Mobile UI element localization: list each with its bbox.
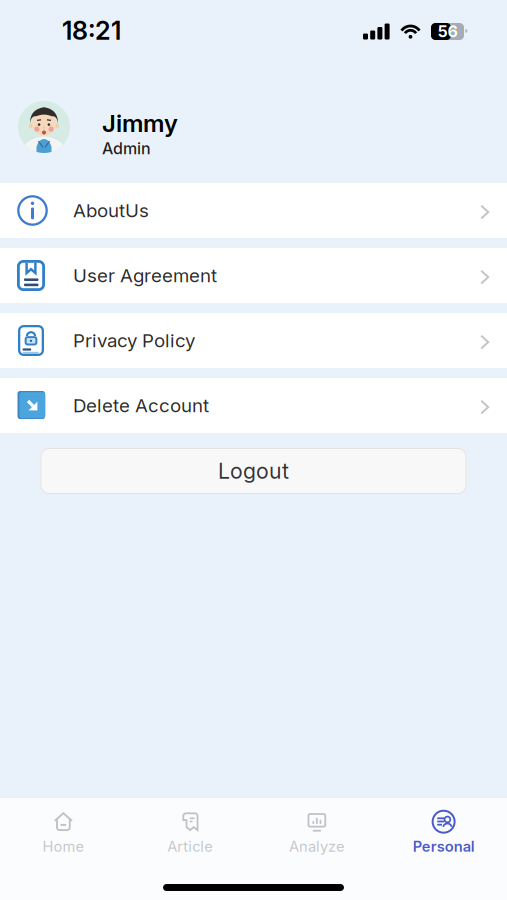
staticText: Analyze [289,838,345,855]
staticText: 18:21 [62,15,121,45]
button[interactable]: Privacy Policy [0,313,507,368]
button[interactable]: Article [127,810,254,866]
staticText: Logout [218,458,289,484]
staticText: Jimmy [102,109,178,137]
button[interactable]: Delete Account [0,378,507,433]
staticText: 56 [437,22,457,41]
staticText: Personal [413,838,475,855]
staticText: Home [42,838,84,855]
staticText: Privacy Policy [73,329,195,351]
button[interactable]: Personal [380,810,507,866]
button[interactable]: Analyze [253,810,380,866]
staticText: Article [167,838,213,855]
staticText: AboutUs [73,199,149,221]
staticText: Admin [102,139,151,158]
button[interactable]: Home [0,810,127,866]
staticText: Delete Account [73,394,209,416]
staticText: User Agreement [73,264,217,286]
button[interactable]: User Agreement [0,248,507,303]
button[interactable]: Logout [40,448,466,494]
button[interactable]: AboutUs [0,183,507,238]
